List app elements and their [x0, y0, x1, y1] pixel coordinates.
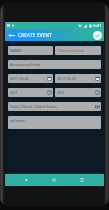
staticText: 28:9 — [57, 90, 65, 95]
staticText: 6:41 — [93, 23, 102, 29]
staticText: NAMES — [10, 48, 23, 53]
button[interactable]: Save event — [93, 31, 102, 40]
button[interactable]: 28:9 — [55, 88, 101, 97]
button[interactable]: Back — [21, 176, 30, 185]
staticText: CREATE EVENT — [18, 32, 53, 38]
staticText: *Required fields — [57, 48, 85, 53]
staticText: 00:9 — [10, 90, 18, 95]
button[interactable]: welcome — [8, 116, 101, 129]
button[interactable]: Recent apps — [77, 176, 86, 185]
staticText: Texas, Illinois, United States — [10, 104, 57, 109]
button[interactable]: 00:9 — [8, 88, 53, 97]
button[interactable]: NAMES — [8, 46, 53, 55]
button[interactable]: Anniversary Event — [8, 60, 101, 69]
staticText: 2017-06-25 — [10, 76, 29, 81]
button[interactable]: 2017-06-25 — [8, 74, 53, 83]
button[interactable]: 2017-06-25 — [55, 74, 101, 83]
button[interactable]: Back — [8, 29, 15, 41]
button[interactable]: Home — [49, 176, 58, 185]
staticText: 2017-06-25 — [57, 76, 76, 81]
button[interactable]: *Required fields — [55, 46, 101, 55]
staticText: welcome — [10, 118, 26, 123]
button[interactable]: Texas, Illinois, United States — [8, 102, 101, 111]
staticText: Anniversary Event — [10, 62, 41, 67]
